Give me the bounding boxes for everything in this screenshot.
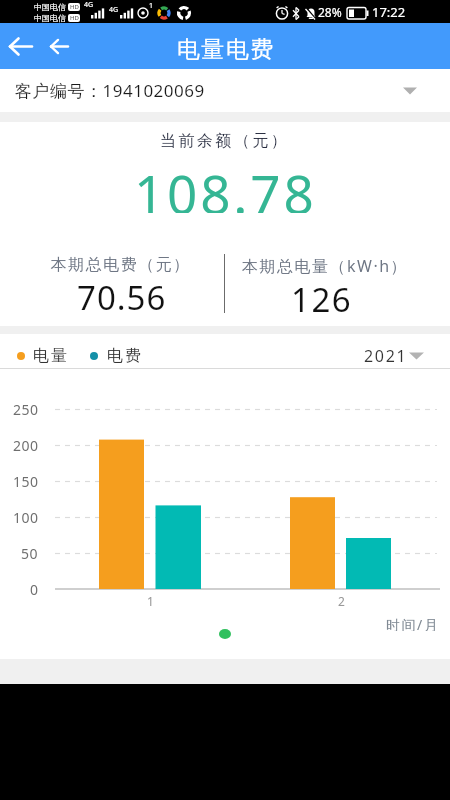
- staticText: 126: [291, 277, 353, 322]
- button[interactable]: [0, 33, 80, 63]
- staticText: 电量: [32, 346, 68, 366]
- staticText: 1: [147, 593, 154, 609]
- staticText: 电量电费: [176, 35, 274, 64]
- button[interactable]: 客户编号：1941020069: [0, 69, 450, 112]
- staticText: 2021: [364, 345, 408, 367]
- button[interactable]: 2021: [364, 345, 424, 367]
- staticText: HD: [70, 3, 79, 11]
- staticText: 当前余额（元）: [160, 131, 290, 151]
- staticText: 客户编号：1941020069: [15, 79, 205, 102]
- staticText: 200: [13, 436, 39, 452]
- staticText: 70.56: [77, 275, 167, 320]
- staticText: 本期总电量（kW·h）: [242, 255, 409, 277]
- staticText: 2: [338, 593, 345, 609]
- staticText: 0: [30, 580, 39, 596]
- button[interactable]: 电量: [17, 346, 68, 366]
- staticText: 电费: [106, 346, 142, 366]
- button[interactable]: 电费: [90, 346, 142, 366]
- staticText: 时间/月: [386, 615, 440, 631]
- staticText: 250: [13, 400, 39, 416]
- staticText: 4G: [84, 0, 94, 10]
- staticText: 中国电信: [34, 13, 66, 23]
- staticText: 4G: [109, 5, 119, 15]
- staticText: 17:22: [372, 3, 406, 21]
- staticText: 28%: [318, 4, 342, 20]
- staticText: 本期总电费（元）: [50, 255, 190, 275]
- staticText: 1: [149, 1, 154, 11]
- staticText: 108.78: [134, 157, 317, 213]
- staticText: HD: [70, 14, 79, 22]
- staticText: 150: [13, 472, 39, 488]
- staticText: 50: [21, 544, 39, 560]
- staticText: 中国电信: [34, 2, 66, 12]
- staticText: 100: [13, 508, 39, 524]
